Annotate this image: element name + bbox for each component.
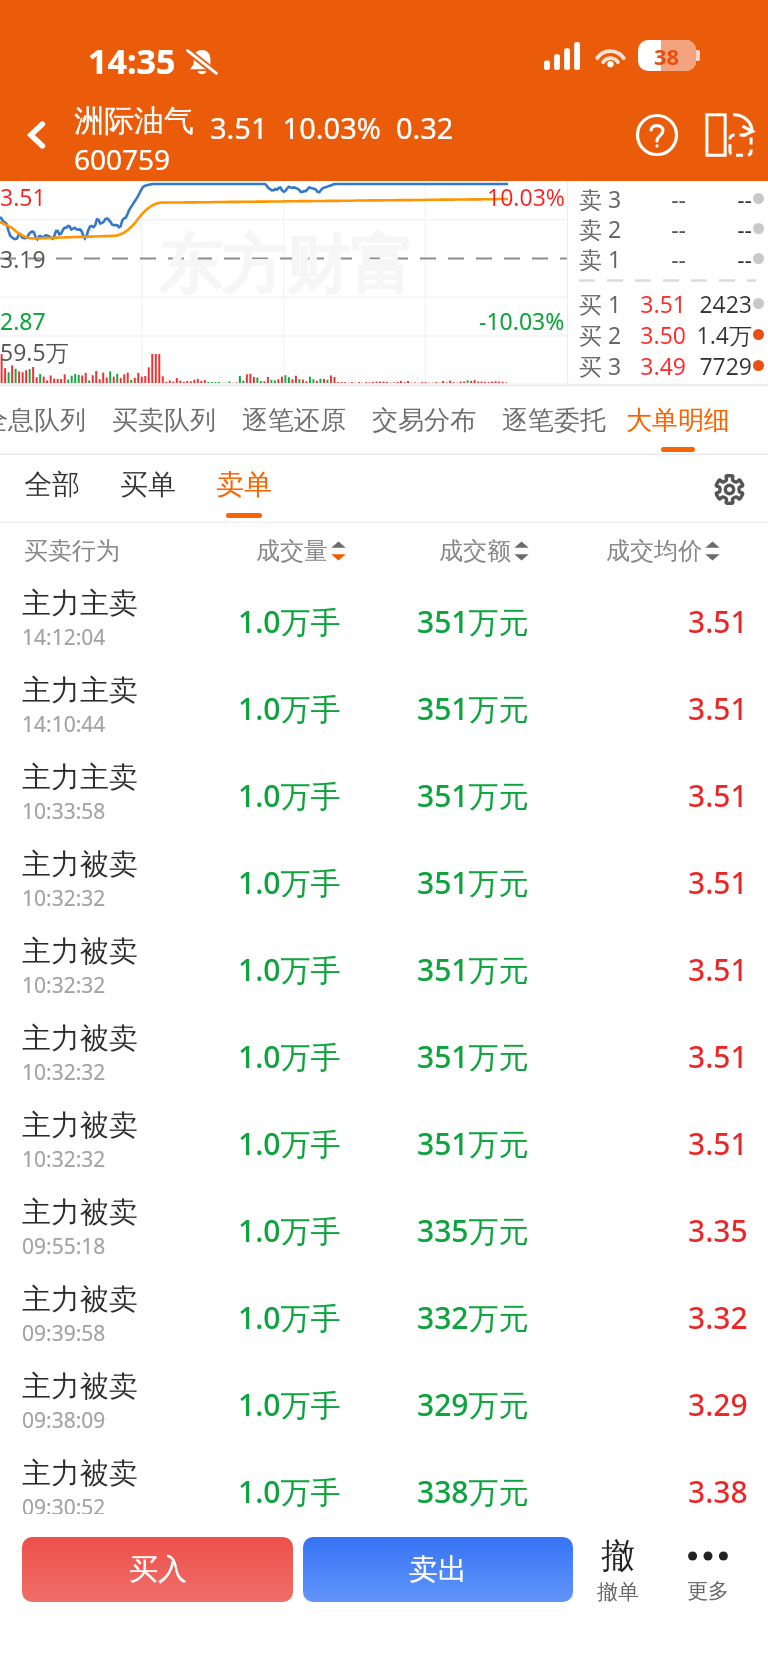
button[interactable]: 成交量	[256, 536, 346, 566]
staticText: 09:39:58	[22, 1319, 106, 1348]
staticText: 1.0万手	[238, 775, 341, 816]
button[interactable]: 买单	[120, 455, 176, 523]
button[interactable]: 全息队列	[0, 385, 99, 455]
button[interactable]: 买 3	[567, 350, 768, 381]
staticText: 主力被卖	[22, 1020, 138, 1057]
staticText: 7729	[690, 350, 752, 381]
staticText: 撤	[601, 1534, 635, 1577]
staticText: 3.51	[688, 1123, 748, 1164]
button[interactable]: 成交均价	[606, 536, 720, 566]
button[interactable]: 主力主卖	[0, 665, 768, 752]
staticText: 交易分布	[372, 404, 476, 437]
staticText: 3.51	[688, 775, 748, 816]
staticText: 主力被卖	[22, 1281, 138, 1318]
staticText: 逐笔委托	[502, 404, 606, 437]
button[interactable]: 买 1	[567, 288, 768, 319]
staticText: 东方财富	[158, 225, 414, 306]
button[interactable]: 大单明细	[619, 385, 737, 455]
button[interactable]: 撤	[580, 1534, 656, 1605]
button[interactable]: 分屏	[692, 98, 766, 172]
staticText: --	[628, 183, 686, 213]
staticText: 主力被卖	[22, 846, 138, 883]
staticText: 1.0万手	[238, 688, 341, 729]
button[interactable]: 主力被卖	[0, 1448, 768, 1535]
staticText: 351万元	[417, 949, 529, 990]
button[interactable]: 逐笔还原	[229, 385, 359, 455]
button[interactable]: 更多	[670, 1534, 746, 1604]
button[interactable]: 主力被卖	[0, 1274, 768, 1361]
staticText: 3.51	[0, 181, 46, 212]
button[interactable]: 卖 1	[567, 243, 768, 273]
staticText: 332万元	[417, 1297, 529, 1338]
staticText: 3.51	[688, 949, 748, 990]
button[interactable]: 买 2	[567, 319, 768, 350]
staticText: 329万元	[417, 1384, 529, 1425]
staticText: 351万元	[417, 862, 529, 903]
staticText: 洲际油气	[74, 102, 194, 140]
staticText: 主力主卖	[22, 585, 138, 622]
button[interactable]: 卖单	[216, 455, 272, 523]
staticText: --	[628, 213, 686, 243]
staticText: 主力主卖	[22, 759, 138, 796]
staticText: 338万元	[417, 1471, 529, 1512]
staticText: 3.35	[688, 1210, 748, 1251]
staticText: 59.5万	[0, 336, 69, 367]
button[interactable]: 卖 3	[567, 183, 768, 213]
staticText: 351万元	[417, 1123, 529, 1164]
staticText: 买入	[129, 1551, 187, 1588]
staticText: 1.0万手	[238, 862, 341, 903]
staticText: 600759	[74, 140, 171, 178]
staticText: 主力被卖	[22, 1107, 138, 1144]
staticText: 逐笔还原	[242, 404, 346, 437]
staticText: 3.51	[628, 288, 686, 319]
button[interactable]: 买卖队列	[99, 385, 229, 455]
button[interactable]: 主力主卖	[0, 578, 768, 665]
staticText: 09:30:52	[22, 1493, 106, 1522]
staticText: 335万元	[417, 1210, 529, 1251]
staticText: 买 1	[579, 288, 622, 319]
staticText: 成交均价	[606, 536, 702, 566]
staticText: 1.0万手	[238, 1123, 341, 1164]
staticText: 3.51	[688, 862, 748, 903]
button[interactable]: 卖 2	[567, 213, 768, 243]
staticText: 1.0万手	[238, 601, 341, 642]
staticText: 14:10:44	[22, 710, 106, 739]
button[interactable]: 设置	[701, 461, 757, 517]
staticText: 卖单	[216, 467, 272, 502]
button[interactable]: 成交额	[439, 536, 529, 566]
staticText: 主力被卖	[22, 933, 138, 970]
staticText: 10:33:58	[22, 797, 106, 826]
staticText: 卖 1	[579, 243, 622, 273]
button[interactable]: 返回	[0, 88, 74, 181]
staticText: 3.38	[688, 1471, 748, 1512]
staticText: 3.50	[628, 319, 686, 350]
staticText: 3.32	[688, 1297, 748, 1338]
button[interactable]: 主力被卖	[0, 1013, 768, 1100]
button[interactable]: 买入	[22, 1537, 293, 1602]
button[interactable]: 主力被卖	[0, 1187, 768, 1274]
staticText: 351万元	[417, 688, 529, 729]
staticText: 1.0万手	[238, 1384, 341, 1425]
staticText: 3.29	[688, 1384, 748, 1425]
button[interactable]: 主力主卖	[0, 752, 768, 839]
button[interactable]: 逐笔委托	[489, 385, 619, 455]
button[interactable]: 主力被卖	[0, 1100, 768, 1187]
staticText: 主力被卖	[22, 1368, 138, 1405]
staticText: 3.19	[0, 243, 46, 274]
staticText: 10:32:32	[22, 1145, 106, 1174]
button[interactable]: 主力被卖	[0, 1361, 768, 1448]
button[interactable]: 交易分布	[359, 385, 489, 455]
staticText: 351万元	[417, 775, 529, 816]
staticText: 主力主卖	[22, 672, 138, 709]
staticText: 卖出	[409, 1551, 467, 1588]
staticText: 买 3	[579, 350, 622, 381]
button[interactable]: 主力被卖	[0, 839, 768, 926]
button[interactable]: 卖出	[303, 1537, 573, 1602]
button[interactable]: 帮助	[619, 97, 695, 173]
button[interactable]: 全部	[24, 455, 80, 523]
button[interactable]: 主力被卖	[0, 926, 768, 1013]
staticText: 3.51 10.03% 0.32	[210, 108, 454, 147]
staticText: --	[690, 243, 752, 273]
staticText: 买 2	[579, 319, 622, 350]
staticText: 351万元	[417, 1036, 529, 1077]
